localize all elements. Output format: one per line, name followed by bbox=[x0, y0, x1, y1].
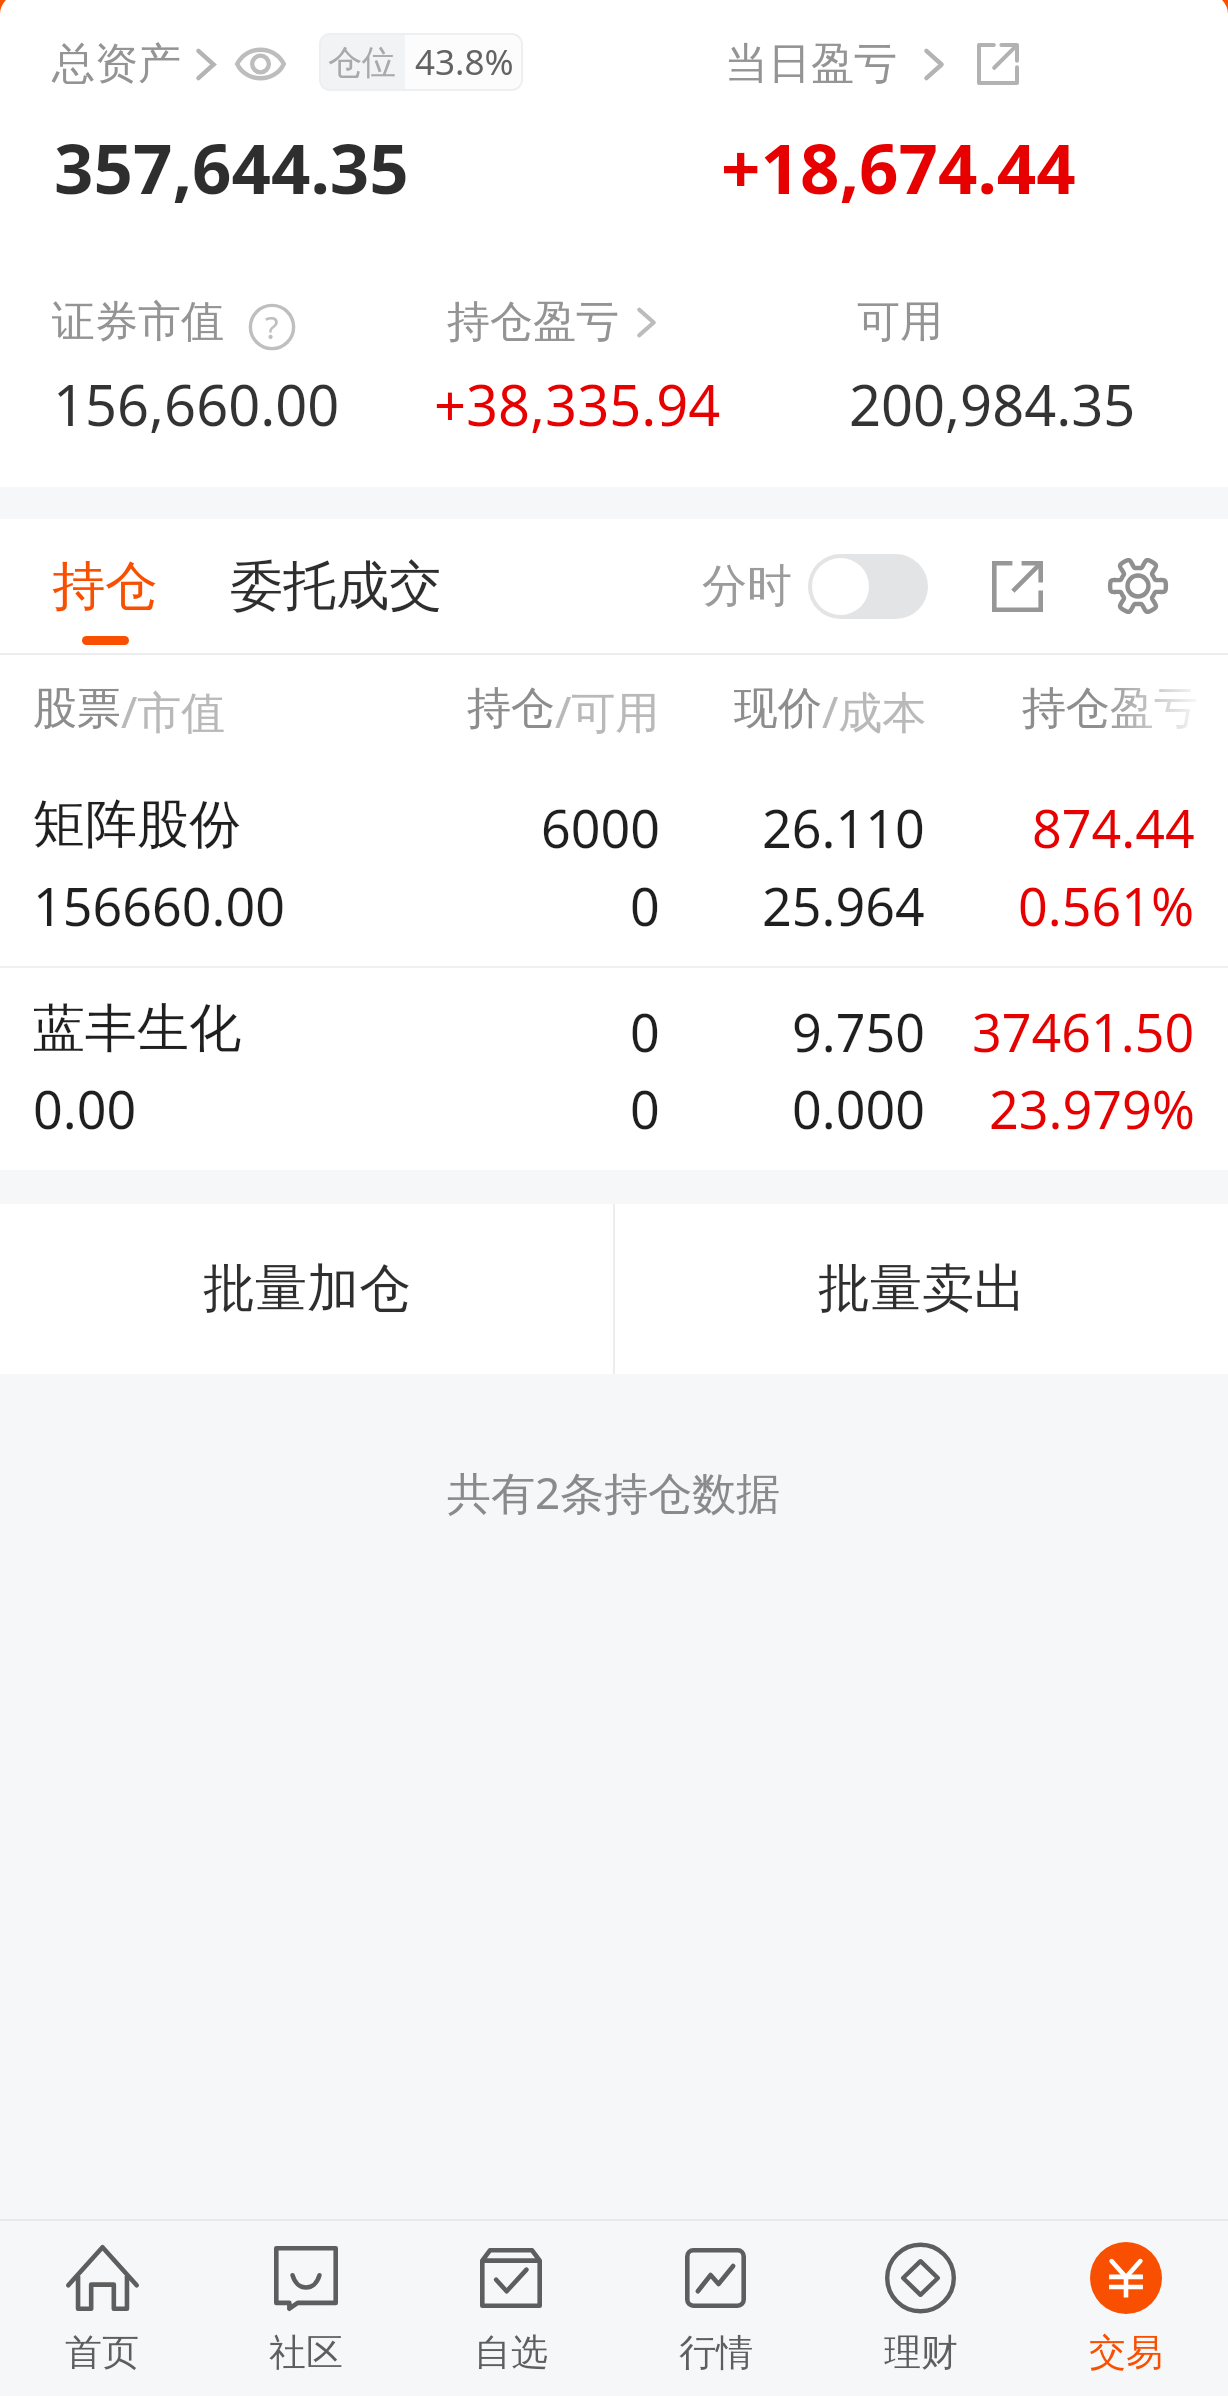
staticText: 首页 bbox=[65, 2329, 139, 2376]
staticText: 43.8% bbox=[415, 38, 514, 86]
button[interactable]: Open in new window bbox=[977, 519, 1057, 653]
staticText: 自选 bbox=[474, 2329, 548, 2376]
staticText: 现价 bbox=[734, 681, 822, 736]
staticText: 理财 bbox=[884, 2329, 958, 2376]
staticText: 行情 bbox=[679, 2329, 753, 2376]
staticText: 蓝丰生化 bbox=[33, 996, 241, 1062]
staticText: 仓位 bbox=[328, 41, 396, 84]
staticText: ? bbox=[265, 306, 279, 348]
button[interactable]: 仓位 bbox=[319, 33, 523, 91]
staticText: 23.979% bbox=[989, 1073, 1195, 1144]
button[interactable]: 持仓盈亏 bbox=[447, 292, 656, 352]
staticText: 0 bbox=[630, 870, 660, 941]
button[interactable]: 持仓 bbox=[38, 519, 172, 653]
button[interactable]: 交易 bbox=[1023, 2221, 1228, 2396]
staticText: 37461.50 bbox=[972, 996, 1195, 1067]
staticText: 0.561% bbox=[1018, 870, 1195, 941]
staticText: 156,660.00 bbox=[53, 366, 340, 442]
button[interactable]: Hide assets bbox=[225, 28, 295, 100]
staticText: 社区 bbox=[269, 2329, 343, 2376]
button[interactable] bbox=[0, 968, 1228, 1170]
staticText: /市值 bbox=[121, 681, 226, 741]
staticText: 0.00 bbox=[33, 1073, 137, 1144]
button[interactable]: 自选 bbox=[408, 2221, 613, 2396]
button[interactable]: Open detail bbox=[963, 28, 1033, 100]
button[interactable]: 社区 bbox=[204, 2221, 408, 2396]
staticText: 当日盈亏 bbox=[725, 37, 897, 91]
button[interactable]: Settings bbox=[1098, 519, 1178, 653]
staticText: 9.750 bbox=[792, 996, 925, 1067]
button[interactable]: 理财 bbox=[818, 2221, 1023, 2396]
staticText: 持仓 bbox=[467, 681, 555, 736]
staticText: 25.964 bbox=[762, 870, 925, 941]
staticText: 持仓 bbox=[52, 553, 158, 620]
staticText: 200,984.35 bbox=[849, 366, 1136, 442]
staticText: 共有2条持仓数据 bbox=[447, 1462, 781, 1522]
staticText: /成本 bbox=[822, 681, 927, 741]
staticText: 矩阵股份 bbox=[33, 792, 241, 858]
button[interactable]: Time-sharing toggle bbox=[686, 519, 942, 653]
staticText: 0 bbox=[630, 1073, 660, 1144]
staticText: 分时 bbox=[702, 558, 792, 615]
button[interactable]: 委托成交 bbox=[214, 519, 458, 653]
staticText: 总资产 bbox=[52, 37, 181, 91]
staticText: 批量加仓 bbox=[203, 1256, 411, 1322]
staticText: 可用 bbox=[857, 295, 943, 349]
button[interactable]: 批量卖出 bbox=[615, 1204, 1228, 1374]
staticText: 股票 bbox=[33, 681, 121, 736]
staticText: 156660.00 bbox=[33, 870, 285, 941]
staticText: 0.000 bbox=[792, 1073, 925, 1144]
button[interactable] bbox=[0, 743, 1228, 966]
staticText: 6000 bbox=[541, 792, 660, 863]
staticText: 委托成交 bbox=[230, 553, 442, 620]
staticText: 357,644.35 bbox=[54, 120, 409, 214]
staticText: 0 bbox=[630, 996, 660, 1067]
staticText: 874.44 bbox=[1032, 792, 1195, 863]
staticText: 持仓盈亏 bbox=[1022, 681, 1198, 736]
staticText: 批量卖出 bbox=[818, 1256, 1026, 1322]
button[interactable]: 当日盈亏 bbox=[725, 28, 944, 100]
staticText: 交易 bbox=[1089, 2329, 1163, 2376]
button[interactable]: 行情 bbox=[613, 2221, 818, 2396]
staticText: 证券市值 bbox=[52, 295, 224, 349]
staticText: +38,335.94 bbox=[434, 366, 721, 442]
button[interactable]: 首页 bbox=[0, 2221, 204, 2396]
button[interactable]: 总资产 bbox=[52, 28, 216, 100]
staticText: 26.110 bbox=[762, 792, 925, 863]
staticText: 持仓盈亏 bbox=[447, 295, 619, 349]
staticText: /可用 bbox=[555, 681, 660, 741]
button[interactable]: 批量加仓 bbox=[0, 1204, 613, 1374]
staticText: +18,674.44 bbox=[721, 120, 1076, 214]
